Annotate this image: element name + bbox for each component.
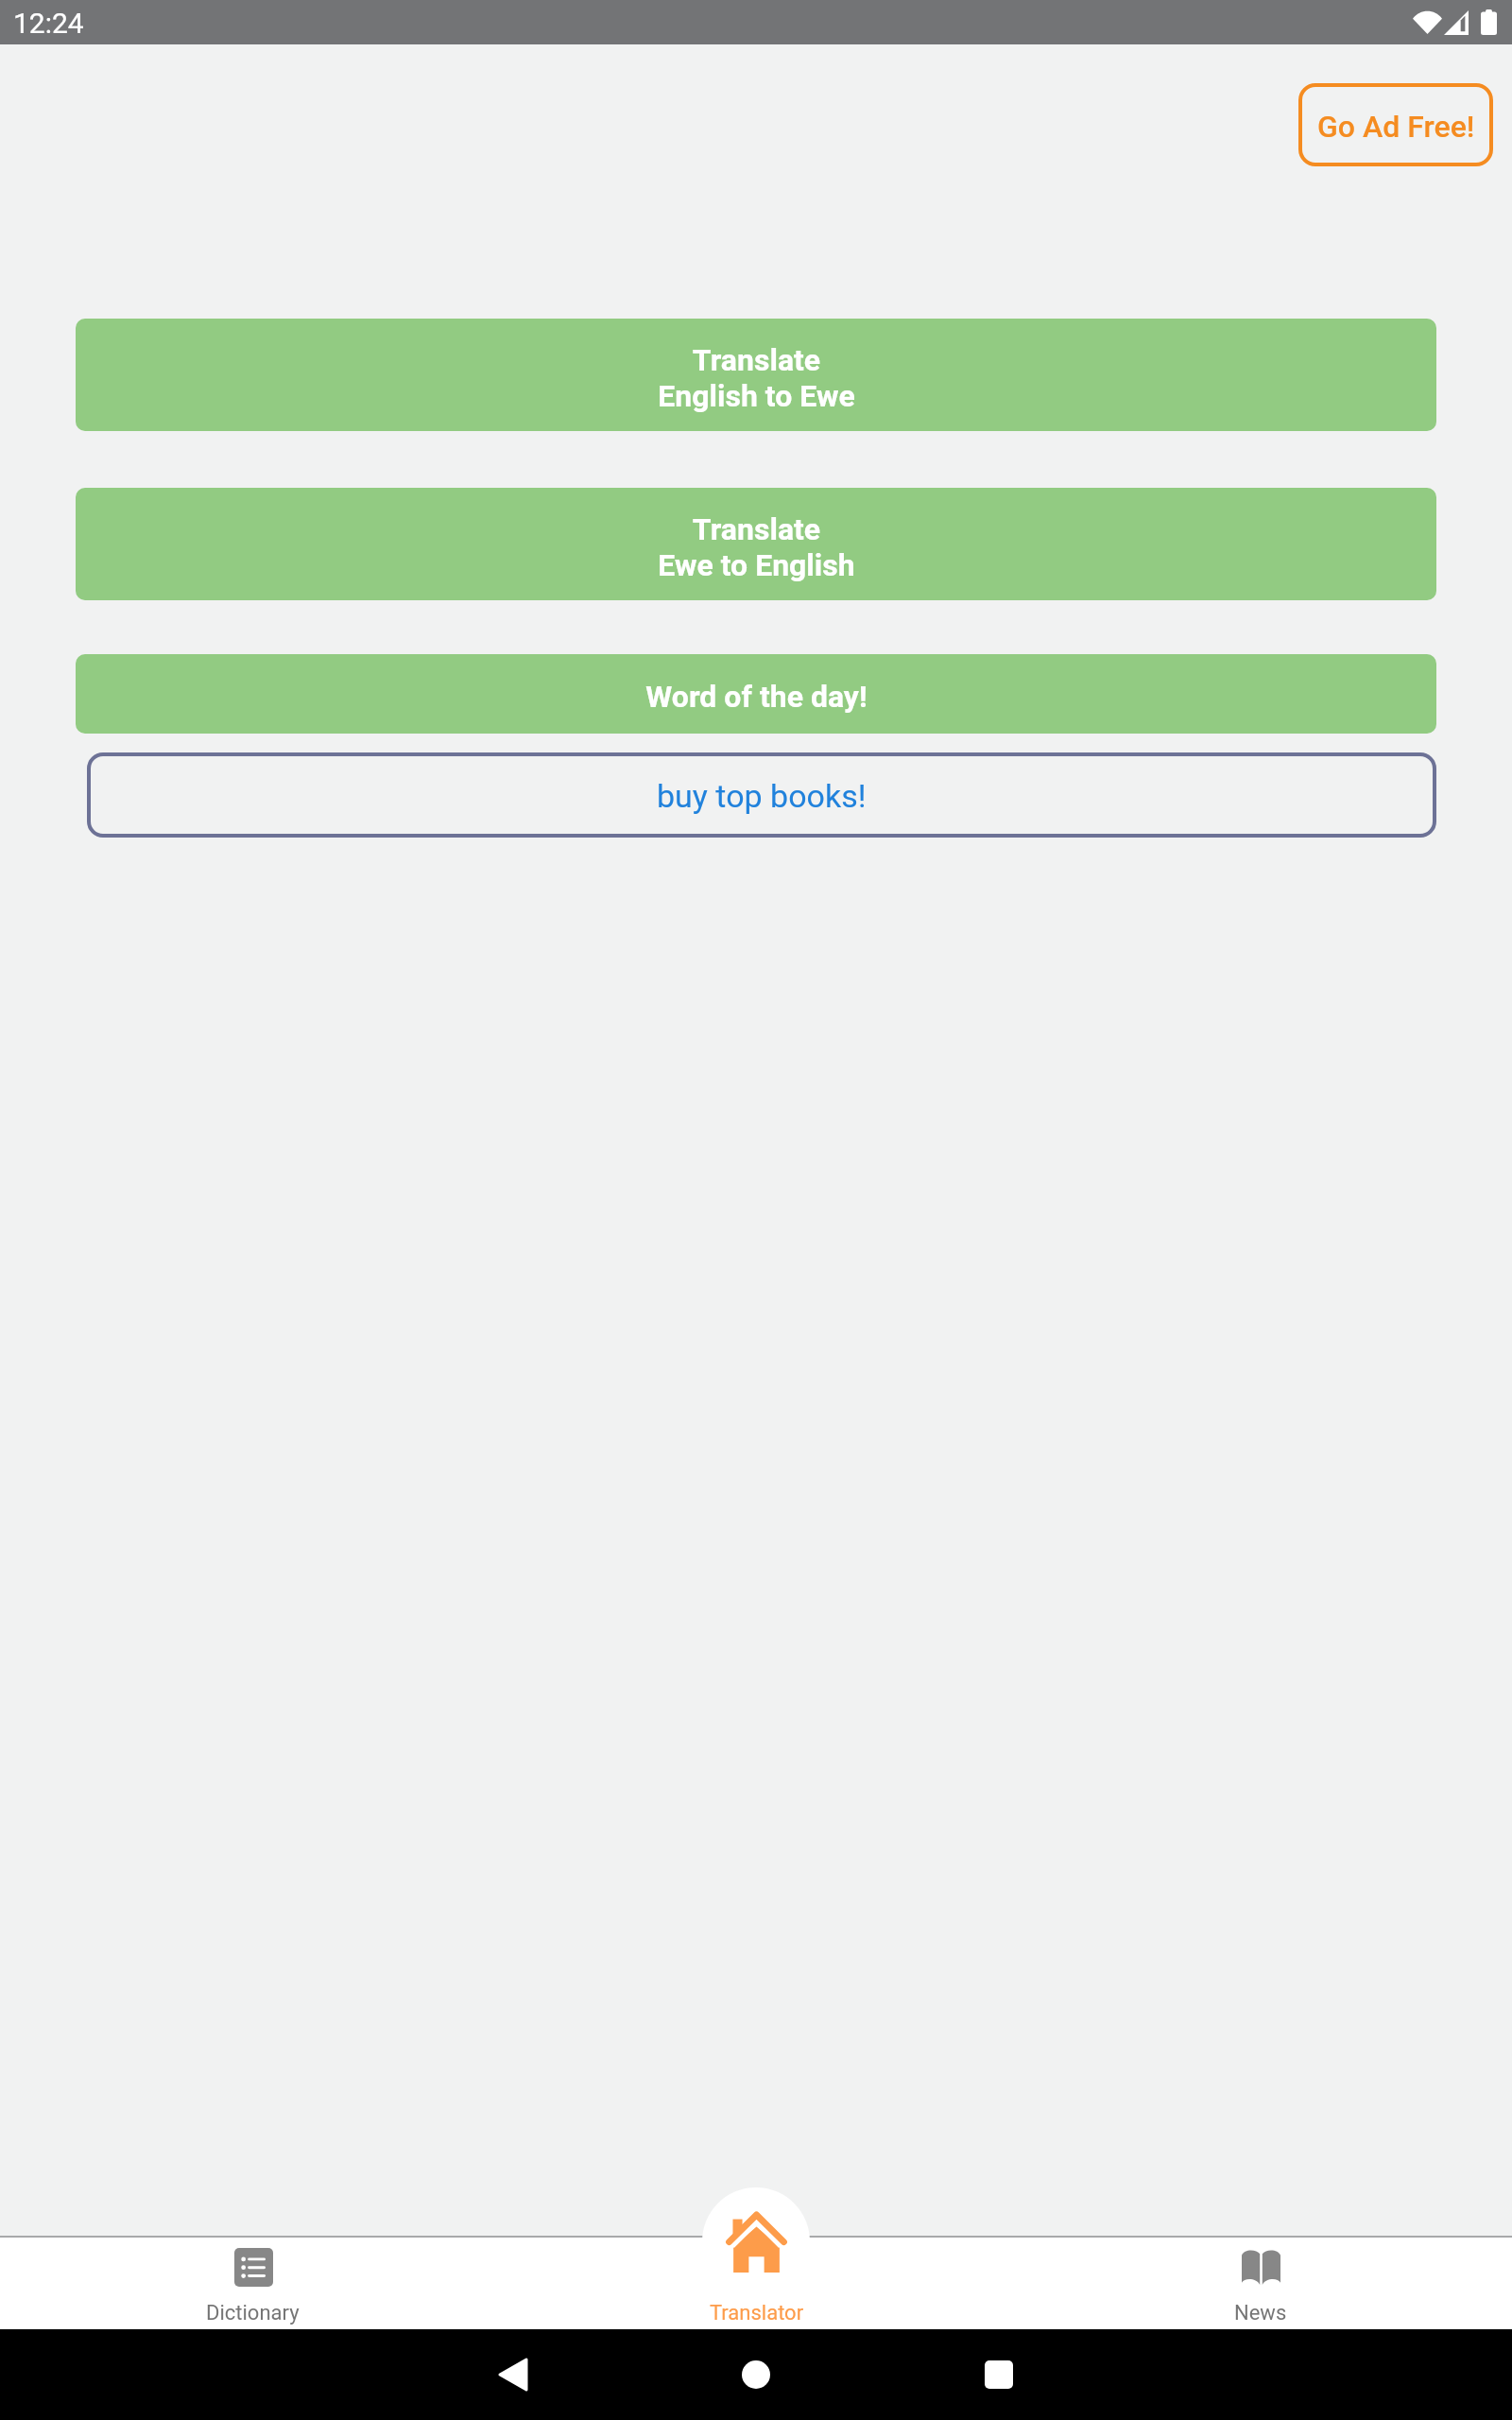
staticText: Translate English to Ewe <box>658 342 855 414</box>
button[interactable]: Translator home <box>702 2187 810 2295</box>
staticText: Dictionary <box>206 2301 300 2325</box>
button[interactable]: buy top books! <box>87 752 1436 838</box>
button[interactable]: Translate English to Ewe <box>76 319 1436 431</box>
staticText: Go Ad Free! <box>1317 109 1475 145</box>
button[interactable]: Recent apps <box>971 2347 1026 2402</box>
button[interactable]: Go Ad Free! <box>1298 83 1493 166</box>
staticText: Translator <box>710 2301 804 2325</box>
staticText: News <box>1234 2301 1287 2325</box>
button[interactable]: Dictionary <box>0 2236 505 2329</box>
button[interactable]: Translator <box>505 2236 1008 2329</box>
staticText: buy top books! <box>657 777 867 815</box>
staticText: 12:24 <box>13 7 84 40</box>
button[interactable]: Word of the day! <box>76 654 1436 734</box>
staticText: Translate Ewe to English <box>658 511 855 583</box>
button[interactable]: Home <box>729 2347 783 2402</box>
button[interactable]: Translate Ewe to English <box>76 488 1436 600</box>
button[interactable]: News <box>1008 2236 1512 2329</box>
staticText: Word of the day! <box>645 679 868 715</box>
button[interactable]: Back <box>486 2347 541 2402</box>
